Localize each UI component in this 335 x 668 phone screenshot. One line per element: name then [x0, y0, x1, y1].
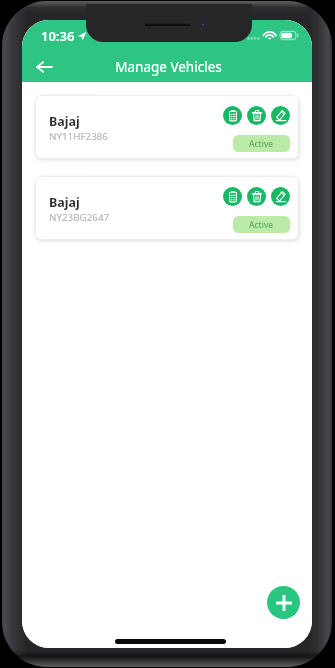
- staticText: NY11HF2386: [49, 130, 108, 143]
- button[interactable]: Add vehicle: [267, 586, 300, 619]
- button[interactable]: Active: [233, 216, 290, 233]
- button[interactable]: Bajaj: [35, 95, 299, 159]
- button[interactable]: Edit: [271, 187, 290, 206]
- staticText: NY23BG2647: [49, 211, 110, 224]
- button[interactable]: Back: [29, 52, 59, 82]
- button[interactable]: Bajaj: [35, 176, 299, 240]
- staticText: Active: [249, 138, 274, 150]
- button[interactable]: View details: [223, 187, 242, 206]
- button[interactable]: Active: [233, 135, 290, 152]
- staticText: Manage Vehicles: [115, 58, 222, 76]
- staticText: 10:36: [41, 27, 75, 45]
- button[interactable]: Edit: [271, 106, 290, 125]
- button[interactable]: Delete: [247, 187, 266, 206]
- button[interactable]: Delete: [247, 106, 266, 125]
- staticText: Bajaj: [49, 113, 80, 130]
- staticText: Active: [249, 219, 274, 231]
- button[interactable]: View details: [223, 106, 242, 125]
- staticText: Bajaj: [49, 194, 80, 211]
